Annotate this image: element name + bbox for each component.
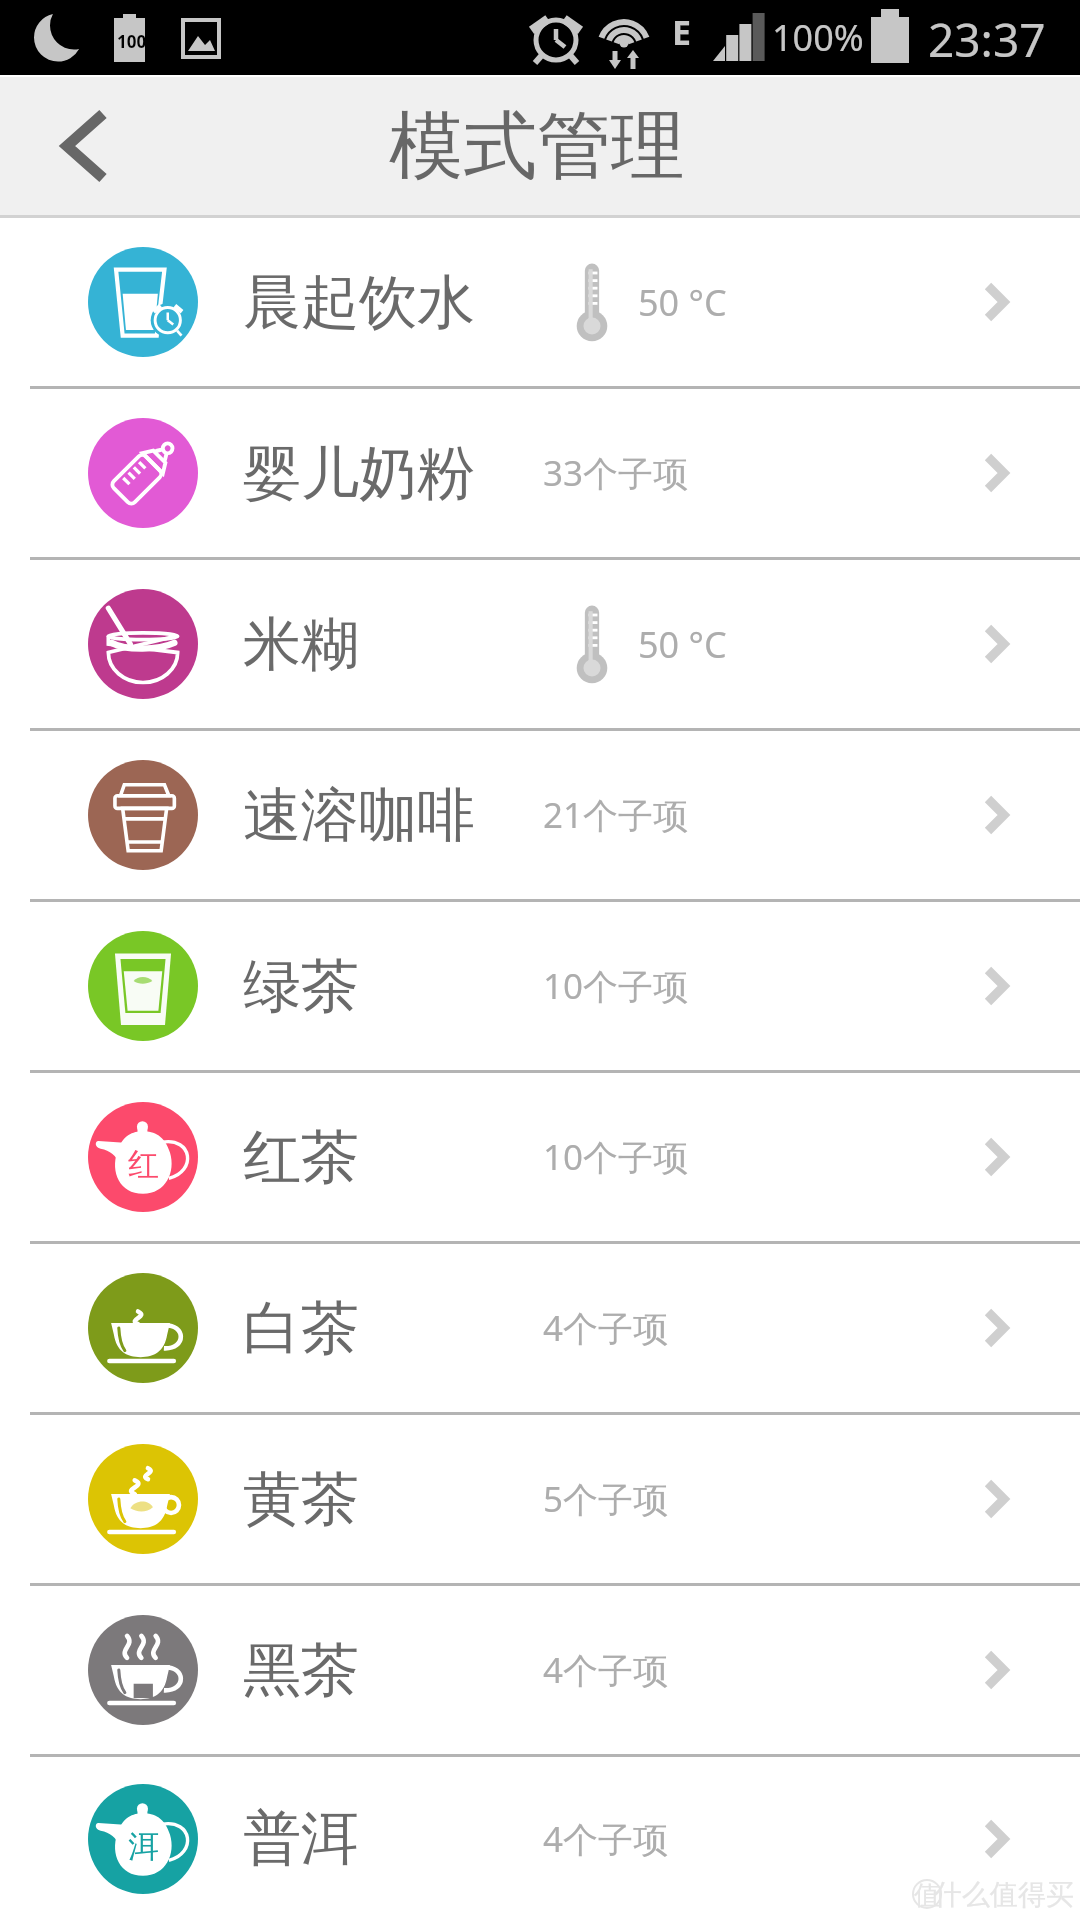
- staticText: 米糊: [243, 608, 359, 681]
- staticText: 洱: [128, 1827, 159, 1866]
- staticText: 红: [128, 1145, 159, 1184]
- button[interactable]: 红: [0, 1073, 1080, 1241]
- staticText: 100%: [772, 13, 864, 62]
- staticText: 值: [914, 1879, 940, 1909]
- staticText: 33个子项: [543, 449, 689, 497]
- staticText: 白茶: [243, 1292, 359, 1365]
- button[interactable]: 黄茶: [0, 1415, 1080, 1583]
- staticText: 绿茶: [243, 950, 359, 1023]
- button[interactable]: Open: [951, 1794, 1041, 1884]
- staticText: 4个子项: [543, 1646, 669, 1694]
- staticText: 100: [117, 30, 147, 53]
- staticText: 10个子项: [543, 962, 689, 1010]
- staticText: 21个子项: [543, 791, 689, 839]
- staticText: 什么值得买: [934, 1877, 1074, 1912]
- staticText: 23:37: [928, 8, 1046, 71]
- button[interactable]: Back: [20, 81, 150, 211]
- staticText: 黑茶: [243, 1634, 359, 1707]
- staticText: 黄茶: [243, 1463, 359, 1536]
- staticText: 婴儿奶粉: [243, 437, 475, 510]
- staticText: 50 °C: [638, 278, 727, 327]
- button[interactable]: Open: [951, 1283, 1041, 1373]
- staticText: 晨起饮水: [243, 266, 475, 339]
- button[interactable]: 绿茶: [0, 902, 1080, 1070]
- staticText: 5个子项: [543, 1475, 669, 1523]
- button[interactable]: Open: [951, 941, 1041, 1031]
- staticText: 50 °C: [638, 620, 727, 669]
- staticText: 速溶咖啡: [243, 779, 475, 852]
- button[interactable]: Open: [951, 257, 1041, 347]
- button[interactable]: 速溶咖啡: [0, 731, 1080, 899]
- staticText: 红茶: [243, 1121, 359, 1194]
- button[interactable]: Open: [951, 428, 1041, 518]
- button[interactable]: 晨起饮水: [0, 218, 1080, 386]
- staticText: 普洱: [243, 1802, 359, 1875]
- button[interactable]: Open: [951, 599, 1041, 689]
- button[interactable]: 洱: [0, 1757, 1080, 1920]
- button[interactable]: 白茶: [0, 1244, 1080, 1412]
- button[interactable]: Open: [951, 1454, 1041, 1544]
- button[interactable]: 黑茶: [0, 1586, 1080, 1754]
- staticText: 4个子项: [543, 1304, 669, 1352]
- button[interactable]: Open: [951, 1625, 1041, 1715]
- button[interactable]: 米糊: [0, 560, 1080, 728]
- button[interactable]: Open: [951, 1112, 1041, 1202]
- staticText: 4个子项: [543, 1815, 669, 1863]
- staticText: E: [672, 9, 692, 55]
- staticText: 10个子项: [543, 1133, 689, 1181]
- button[interactable]: 婴儿奶粉: [0, 389, 1080, 557]
- button[interactable]: Open: [951, 770, 1041, 860]
- staticText: 模式管理: [389, 100, 685, 193]
